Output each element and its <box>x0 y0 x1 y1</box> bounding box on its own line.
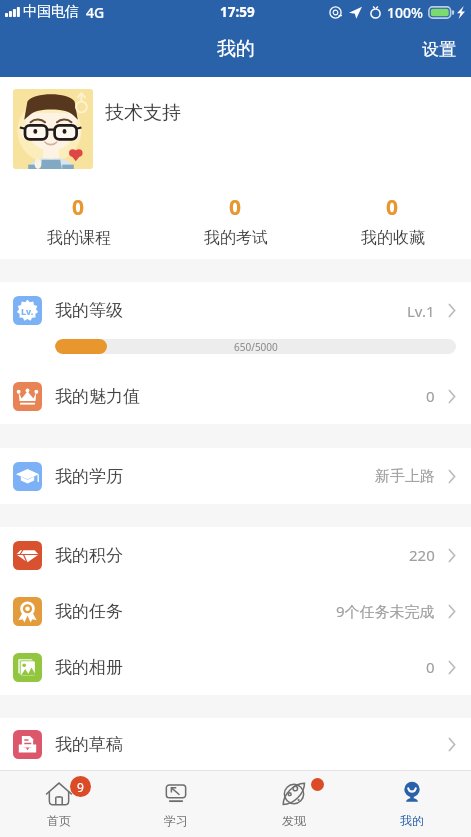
staticText: 0 <box>426 657 435 677</box>
staticText: 0 <box>229 193 242 222</box>
staticText: 我的积分 <box>55 545 123 566</box>
button[interactable]: 我的魅力值 <box>0 368 471 424</box>
button[interactable]: 0 <box>314 181 471 259</box>
staticText: 4G <box>86 3 105 22</box>
staticText: 我的 <box>217 37 255 61</box>
button[interactable]: 0 <box>0 181 157 259</box>
staticText: 我的等级 <box>55 300 123 321</box>
staticText: 我的学历 <box>55 466 123 487</box>
button[interactable]: 学习 <box>117 771 235 837</box>
button[interactable]: Avatar <box>0 77 471 181</box>
staticText: 设置 <box>422 39 456 60</box>
button[interactable]: 发现 <box>235 771 353 837</box>
staticText: 17:59 <box>220 3 255 21</box>
staticText: Lv.1 <box>407 301 435 321</box>
staticText: 我的草稿 <box>55 734 123 755</box>
staticText: 发现 <box>282 813 306 828</box>
button[interactable]: 我的草稿 <box>0 718 471 770</box>
staticText: 我的收藏 <box>361 228 425 248</box>
button[interactable]: 9 <box>0 771 117 837</box>
button[interactable]: 我的相册 <box>0 639 471 695</box>
staticText: 我的相册 <box>55 657 123 678</box>
button[interactable]: 我的学历 <box>0 448 471 504</box>
staticText: 学习 <box>164 813 188 828</box>
other: Avatar <box>13 89 93 169</box>
staticText: 9 <box>77 779 84 795</box>
staticText: 650/5000 <box>234 340 278 354</box>
button[interactable]: 我的 <box>353 771 471 837</box>
button[interactable]: 设置 <box>405 24 471 77</box>
staticText: 0 <box>426 386 435 406</box>
staticText: 220 <box>409 545 435 565</box>
staticText: 9个任务未完成 <box>336 601 435 621</box>
button[interactable]: 0 <box>157 181 314 259</box>
staticText: 0 <box>386 193 399 222</box>
staticText: 中国电信 <box>23 3 79 21</box>
staticText: 新手上路 <box>375 467 435 486</box>
staticText: 我的魅力值 <box>55 386 140 407</box>
staticText: 首页 <box>47 813 71 828</box>
staticText: 我的任务 <box>55 601 123 622</box>
button[interactable]: 我的积分 <box>0 527 471 583</box>
staticText: 技术支持 <box>105 101 181 125</box>
staticText: 0 <box>72 193 85 222</box>
button[interactable]: 我的任务 <box>0 583 471 639</box>
staticText: Lv. <box>21 305 34 317</box>
staticText: 我的考试 <box>204 228 268 248</box>
staticText: 我的课程 <box>47 228 111 248</box>
staticText: 我的 <box>400 813 424 828</box>
button[interactable]: Lv. <box>0 282 471 368</box>
staticText: 100% <box>387 3 423 22</box>
